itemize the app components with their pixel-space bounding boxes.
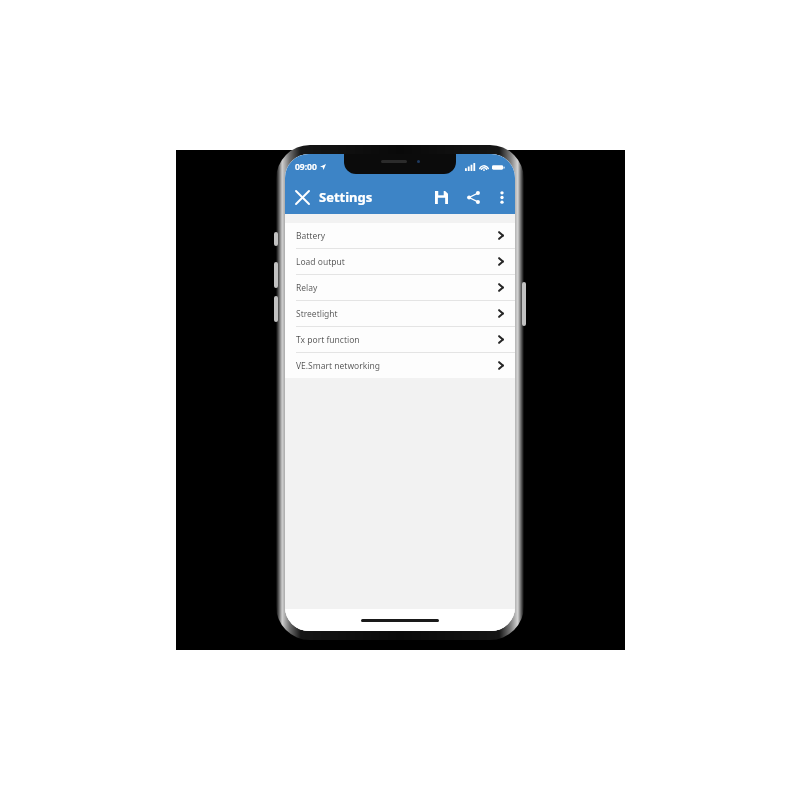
button[interactable]: Streetlight <box>285 301 515 327</box>
staticText: Tx port function <box>296 334 360 346</box>
staticText: 09:00 <box>295 161 317 173</box>
button[interactable]: Share <box>457 180 489 214</box>
button[interactable]: More options <box>489 180 515 214</box>
staticText: Load output <box>296 256 345 268</box>
staticText: Battery <box>296 230 326 242</box>
button[interactable]: Battery <box>285 223 515 249</box>
staticText: Settings <box>319 188 373 206</box>
button[interactable]: VE.Smart networking <box>285 353 515 378</box>
button[interactable]: Load output <box>285 249 515 275</box>
button[interactable]: Close <box>285 180 319 214</box>
staticText: Streetlight <box>296 308 338 320</box>
button[interactable]: Tx port function <box>285 327 515 353</box>
button[interactable]: Save <box>425 180 457 214</box>
button[interactable]: Relay <box>285 275 515 301</box>
staticText: Relay <box>296 282 318 294</box>
staticText: VE.Smart networking <box>296 360 380 372</box>
